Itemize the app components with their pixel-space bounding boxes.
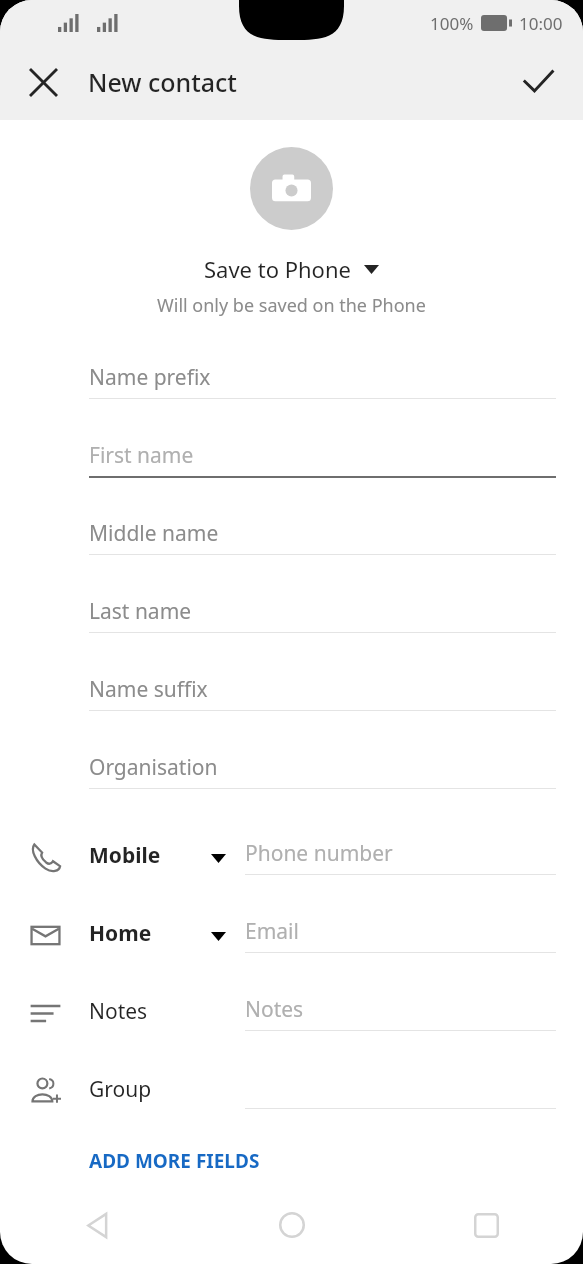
staticText: Home: [89, 919, 152, 948]
button[interactable]: Mobile: [0, 822, 583, 900]
button[interactable]: Save to Phone: [0, 252, 583, 286]
button[interactable]: Add photo: [250, 147, 333, 230]
button[interactable]: Close: [16, 55, 70, 109]
staticText: Mobile: [89, 841, 161, 870]
button[interactable]: Group: [0, 1056, 583, 1134]
staticText: Will only be saved on the Phone: [157, 293, 426, 318]
button[interactable]: Last name: [0, 580, 583, 658]
staticText: Notes: [245, 995, 304, 1024]
staticText: Group: [89, 1075, 152, 1104]
staticText: Middle name: [89, 519, 219, 548]
button[interactable]: Name suffix: [0, 658, 583, 736]
staticText: New contact: [88, 65, 237, 99]
button[interactable]: Home: [0, 900, 583, 978]
staticText: 10:00: [519, 12, 563, 35]
button[interactable]: Home: [195, 1186, 389, 1264]
staticText: 100%: [430, 12, 474, 35]
button[interactable]: Save: [511, 55, 565, 109]
button[interactable]: Recents: [389, 1186, 583, 1264]
button[interactable]: ADD MORE FIELDS: [89, 1142, 260, 1180]
staticText: ADD MORE FIELDS: [89, 1148, 260, 1174]
staticText: Name prefix: [89, 363, 211, 392]
staticText: Organisation: [89, 753, 218, 782]
staticText: Name suffix: [89, 675, 208, 704]
staticText: Last name: [89, 597, 192, 626]
staticText: Phone number: [245, 839, 393, 868]
staticText: Notes: [89, 997, 148, 1026]
staticText: First name: [89, 441, 194, 470]
button[interactable]: Notes: [0, 978, 583, 1056]
button[interactable]: Organisation: [0, 736, 583, 814]
staticText: Email: [245, 917, 299, 946]
staticText: Save to Phone: [204, 254, 351, 284]
button[interactable]: Middle name: [0, 502, 583, 580]
button[interactable]: Back: [0, 1186, 195, 1264]
button[interactable]: First name: [0, 424, 583, 502]
button[interactable]: Name prefix: [0, 346, 583, 424]
